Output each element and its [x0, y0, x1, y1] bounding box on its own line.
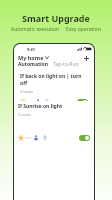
staticText: 9:41 [27, 47, 35, 52]
button[interactable]: Tap-to-Run [53, 61, 79, 68]
button[interactable]: Add [82, 54, 90, 62]
button[interactable]: My home [18, 54, 49, 61]
staticText: Easy operation [66, 26, 101, 33]
staticText: 3 tasks [18, 112, 31, 117]
staticText: If Sunrise on light [18, 103, 63, 110]
button[interactable]: If Sunrise on light [15, 101, 93, 143]
staticText: If back on light on | turn off [20, 73, 88, 87]
staticText: Automatic execution [11, 26, 60, 33]
button[interactable]: Toggle automation [77, 99, 88, 105]
staticText: 2 tasks [20, 89, 33, 94]
button[interactable]: If back on light on | turn off [17, 71, 91, 107]
button[interactable]: Automation [18, 61, 48, 68]
button[interactable]: Toggle automation [79, 135, 90, 141]
staticText: Smart Upgrade [22, 12, 90, 24]
staticText: My home [18, 54, 44, 61]
